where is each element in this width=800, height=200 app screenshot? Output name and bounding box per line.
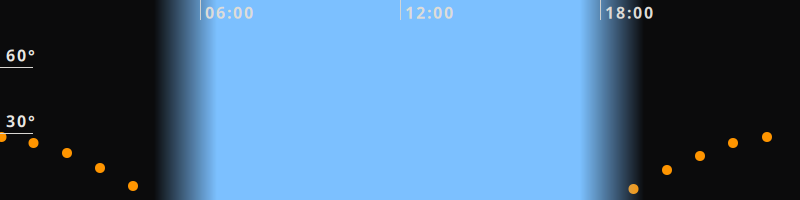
staticText: 6 0 °	[6, 45, 35, 66]
staticText: 1 8 : 0 0	[605, 2, 653, 23]
staticText: 1 2 : 0 0	[405, 2, 453, 23]
staticText: 0 6 : 0 0	[205, 2, 253, 23]
staticText: 3 0 °	[6, 110, 35, 132]
